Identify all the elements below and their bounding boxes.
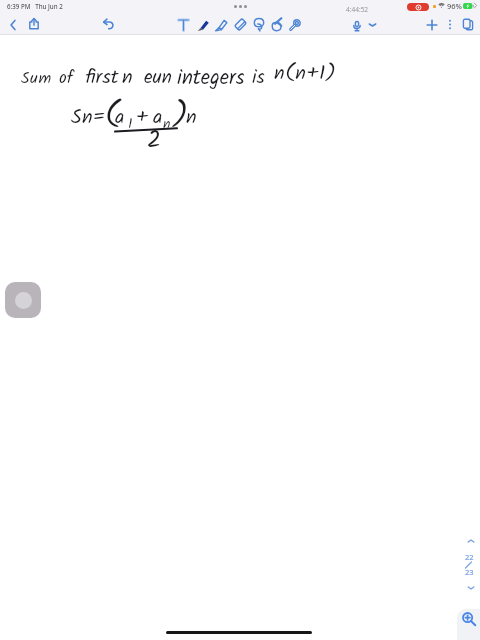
- staticText: of: [59, 65, 74, 92]
- button[interactable]: Hand: [267, 15, 286, 34]
- staticText: n: [122, 62, 134, 94]
- button[interactable]: Recording: [407, 3, 429, 11]
- button[interactable]: Zoom in: [457, 609, 480, 640]
- staticText: 22: [465, 552, 474, 562]
- staticText: 1: [128, 113, 133, 135]
- button[interactable]: Previous page: [457, 529, 480, 552]
- staticText: eun: [144, 63, 172, 93]
- staticText: 23: [465, 567, 474, 577]
- staticText: first: [85, 62, 119, 94]
- staticText: =: [93, 103, 105, 133]
- staticText: 96%: [447, 1, 462, 11]
- staticText: +: [136, 102, 148, 134]
- staticText: 4:44:52: [346, 5, 369, 14]
- button[interactable]: Cut: [285, 15, 304, 34]
- staticText: a: [115, 102, 125, 134]
- button[interactable]: Highlighter: [211, 15, 230, 34]
- staticText: 6:39 PM Thu Jun 2: [7, 2, 63, 10]
- button[interactable]: Add: [422, 15, 441, 34]
- button[interactable]: Recording options: [363, 15, 382, 34]
- button[interactable]: More: [440, 15, 459, 34]
- staticText: Sn: [71, 102, 94, 134]
- staticText: n(n+1): [274, 58, 337, 90]
- button[interactable]: Record audio: [347, 16, 366, 35]
- button[interactable]: Next page: [457, 576, 480, 599]
- staticText: integers: [177, 62, 245, 95]
- staticText: ): [173, 92, 189, 140]
- button[interactable]: Share: [24, 14, 43, 33]
- button[interactable]: Lasso: [249, 15, 268, 34]
- button[interactable]: Undo: [99, 14, 118, 33]
- staticText: n: [163, 113, 171, 135]
- staticText: n: [186, 102, 197, 134]
- staticText: Sum: [21, 66, 52, 92]
- staticText: 2: [147, 121, 161, 159]
- staticText: is: [252, 63, 265, 93]
- button[interactable]: AssistiveTouch: [5, 282, 41, 318]
- button[interactable]: Pages: [458, 15, 477, 34]
- button[interactable]: Text tool: [174, 15, 193, 34]
- button[interactable]: Back: [3, 15, 22, 34]
- button[interactable]: Eraser: [231, 15, 250, 34]
- button[interactable]: Pen tool: [193, 15, 212, 34]
- staticText: a: [153, 102, 163, 134]
- staticText: (: [105, 92, 120, 140]
